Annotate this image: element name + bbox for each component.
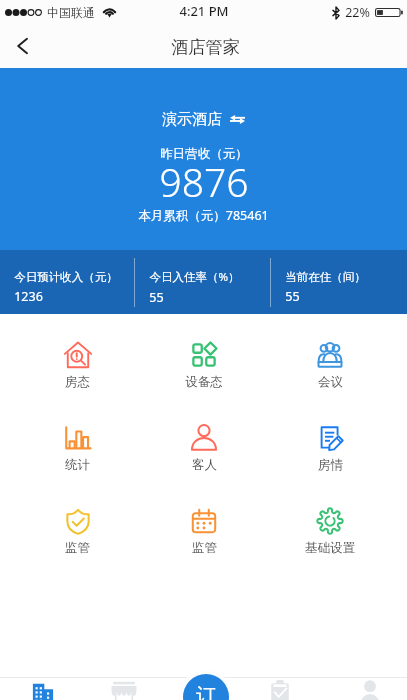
staticText: 55 (285, 288, 300, 305)
button[interactable]: 基础设置 (267, 480, 393, 563)
staticText: 房态 (65, 374, 90, 390)
staticText: 当前在住（间） (285, 270, 366, 284)
button[interactable]: 客人 (141, 397, 267, 480)
button[interactable]: Hotels (0, 644, 82, 700)
button[interactable]: 今日预计收入（元） (0, 250, 135, 314)
button[interactable]: 房态 (14, 314, 141, 397)
staticText: 设备态 (185, 374, 223, 390)
button[interactable]: 监管 (14, 480, 141, 563)
staticText: 监管 (192, 540, 217, 556)
staticText: 今日入住率（%） (149, 269, 240, 285)
staticText: 昨日营收（元） (160, 146, 248, 162)
staticText: 统计 (65, 457, 90, 473)
button[interactable]: 会议 (267, 314, 393, 397)
staticText: 今日预计收入（元） (14, 270, 118, 284)
button[interactable]: 设备态 (141, 314, 267, 397)
staticText: 演示酒店 (162, 110, 222, 129)
staticText: 酒店管家 (171, 36, 240, 58)
button[interactable]: New order (183, 674, 229, 700)
staticText: 基础设置 (305, 540, 355, 556)
staticText: 55 (149, 289, 164, 306)
staticText: 会议 (318, 374, 343, 390)
staticText: 中国联通 (47, 5, 95, 20)
staticText: 订 (196, 683, 216, 700)
staticText: 4:21 PM (179, 2, 229, 20)
staticText: 1236 (14, 288, 43, 305)
staticText: 客人 (192, 457, 217, 473)
button[interactable]: 演示酒店 (162, 110, 245, 129)
button[interactable]: 监管 (141, 480, 267, 563)
staticText: 房情 (318, 457, 343, 473)
staticText: 22% (345, 4, 370, 21)
button[interactable]: Tasks (245, 644, 326, 700)
staticText: 9876 (159, 155, 249, 208)
button[interactable]: 统计 (14, 397, 141, 480)
button[interactable]: Profile (326, 644, 407, 700)
button[interactable]: 房情 (267, 397, 393, 480)
button[interactable]: 当前在住（间） (271, 250, 407, 314)
button[interactable]: Back (0, 24, 44, 68)
staticText: 本月累积（元）785461 (138, 207, 269, 224)
staticText: 监管 (65, 540, 90, 556)
button[interactable]: 今日入住率（%） (135, 250, 271, 314)
button[interactable]: Store (82, 644, 164, 700)
